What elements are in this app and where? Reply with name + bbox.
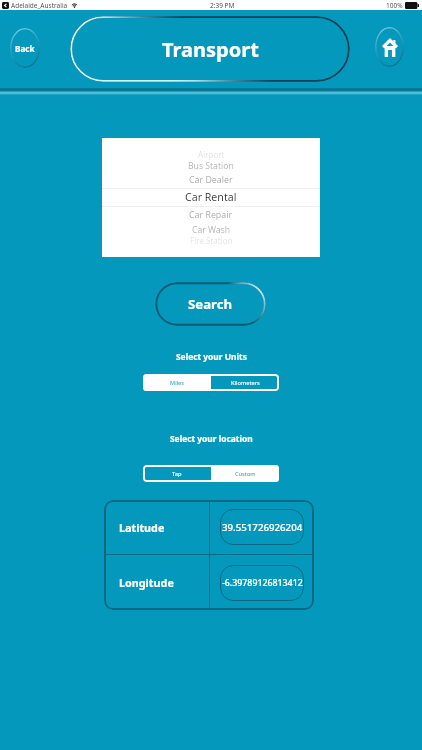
button[interactable]: Search (155, 282, 266, 326)
staticText: Select your location (170, 433, 253, 444)
staticText: Latitude (119, 520, 165, 535)
button[interactable]: Tap (143, 465, 211, 482)
button[interactable]: Airport (102, 138, 320, 257)
staticText: Miles (170, 379, 185, 387)
staticText: Custom (235, 470, 256, 478)
staticText: Back (15, 43, 35, 54)
staticText: Longitude (119, 575, 174, 590)
staticText: -6.39789126813412 (222, 577, 303, 589)
button[interactable]: Custom (211, 465, 279, 482)
staticText: Fire Station (190, 235, 233, 246)
button[interactable]: -6.39789126813412 (220, 565, 304, 601)
button[interactable]: Longitude (104, 555, 209, 610)
staticText: 2:39 PM (210, 1, 235, 10)
button[interactable]: Home (375, 27, 404, 67)
staticText: Adelaide_Australia (11, 1, 68, 10)
button[interactable]: Kilometers (211, 374, 279, 391)
button[interactable]: 39.551726926204 (220, 509, 304, 545)
staticText: Select your Units (176, 351, 247, 362)
staticText: Car Wash (192, 224, 231, 236)
staticText: 100% (386, 1, 403, 10)
staticText: Search (188, 295, 233, 313)
button[interactable]: Latitude (104, 500, 209, 554)
staticText: Bus Station (188, 160, 234, 172)
staticText: Car Repair (189, 209, 233, 221)
staticText: Car Rental (185, 190, 237, 204)
staticText: Kilometers (231, 379, 260, 387)
button[interactable]: Miles (143, 374, 211, 391)
staticText: 39.551726926204 (222, 521, 303, 534)
button[interactable]: Transport (70, 16, 350, 82)
button[interactable]: Back (10, 28, 40, 68)
staticText: Airport (198, 149, 225, 160)
staticText: Transport (162, 36, 259, 63)
staticText: Car Dealer (189, 174, 233, 186)
staticText: Tap (172, 470, 182, 478)
